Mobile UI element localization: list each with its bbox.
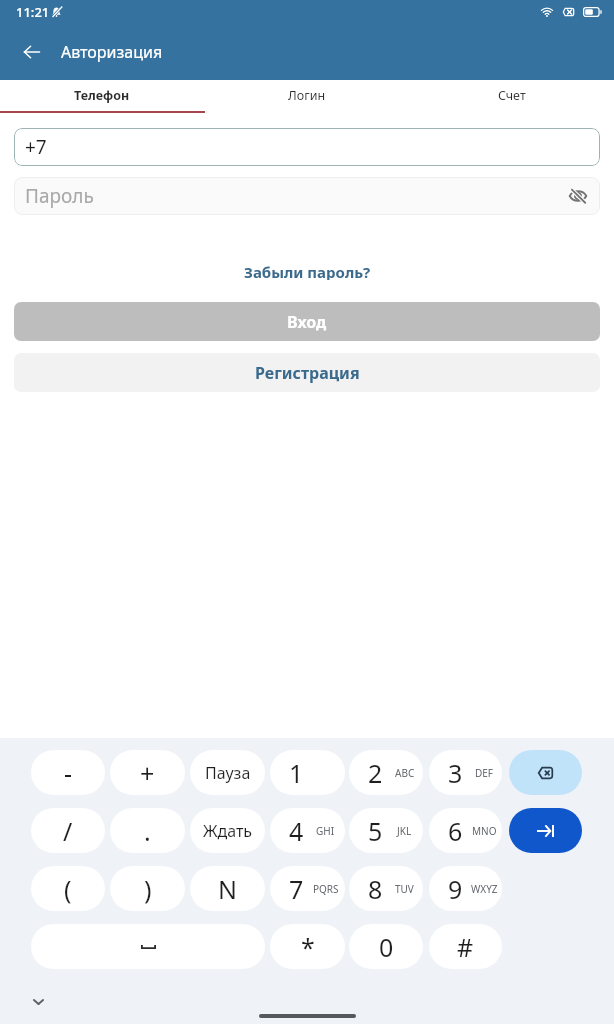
staticText: Логин bbox=[288, 87, 326, 104]
staticText: 2 bbox=[368, 756, 383, 790]
button[interactable]: . bbox=[110, 808, 185, 853]
button[interactable]: 9 bbox=[429, 866, 502, 911]
staticText: +7 bbox=[25, 134, 47, 160]
button[interactable]: Логин bbox=[204, 80, 409, 111]
staticText: 6 bbox=[448, 814, 463, 848]
button[interactable]: Show password bbox=[564, 182, 592, 210]
button[interactable]: 0 bbox=[349, 924, 423, 969]
staticText: Ждать bbox=[203, 820, 253, 842]
button[interactable]: Забыли пароль? bbox=[238, 260, 377, 282]
staticText: - bbox=[64, 756, 73, 790]
staticText: ABC bbox=[395, 766, 415, 780]
staticText: * bbox=[301, 930, 315, 964]
button[interactable]: + bbox=[110, 750, 185, 795]
staticText: 11:21 bbox=[16, 3, 50, 21]
staticText: 9 bbox=[448, 872, 463, 906]
staticText: # bbox=[457, 930, 474, 964]
staticText: N bbox=[218, 872, 238, 906]
button[interactable]: Регистрация bbox=[14, 353, 600, 392]
button[interactable]: - bbox=[31, 750, 105, 795]
staticText: MNO bbox=[472, 824, 497, 838]
button[interactable]: Enter bbox=[509, 808, 582, 853]
button[interactable]: / bbox=[31, 808, 105, 853]
staticText: 7 bbox=[289, 872, 304, 906]
button[interactable]: Телефон bbox=[0, 80, 204, 111]
button[interactable]: Back bbox=[14, 34, 50, 70]
staticText: 1 bbox=[289, 756, 304, 790]
button[interactable]: ) bbox=[110, 866, 185, 911]
button[interactable]: 3 bbox=[429, 750, 502, 795]
staticText: TUV bbox=[395, 882, 414, 896]
button[interactable]: Пауза bbox=[190, 750, 265, 795]
staticText: + bbox=[140, 756, 155, 790]
staticText: Авторизация bbox=[61, 41, 163, 63]
button[interactable]: Backspace bbox=[509, 750, 582, 795]
button[interactable]: Счет bbox=[409, 80, 614, 111]
button[interactable]: 5 bbox=[349, 808, 423, 853]
staticText: DEF bbox=[475, 766, 494, 780]
button[interactable]: 2 bbox=[349, 750, 423, 795]
button[interactable]: 6 bbox=[429, 808, 502, 853]
button[interactable]: * bbox=[270, 924, 345, 969]
staticText: Пауза bbox=[205, 762, 251, 784]
button[interactable]: 4 bbox=[270, 808, 345, 853]
button[interactable]: Пароль bbox=[14, 177, 600, 215]
staticText: / bbox=[63, 814, 73, 848]
button[interactable]: +7 bbox=[14, 128, 600, 166]
staticText: PQRS bbox=[313, 882, 339, 896]
staticText: . bbox=[144, 814, 151, 848]
staticText: Пароль bbox=[25, 183, 94, 209]
staticText: Телефон bbox=[74, 87, 130, 104]
button[interactable]: Space bbox=[31, 924, 265, 969]
staticText: 0 bbox=[379, 930, 394, 964]
staticText: ) bbox=[144, 872, 152, 906]
staticText: WXYZ bbox=[471, 882, 498, 896]
button[interactable]: 1 bbox=[270, 750, 345, 795]
staticText: Регистрация bbox=[255, 362, 360, 384]
staticText: Счет bbox=[498, 87, 526, 104]
button[interactable]: Ждать bbox=[190, 808, 265, 853]
button[interactable]: Вход bbox=[14, 302, 600, 341]
staticText: GHI bbox=[316, 824, 335, 838]
button[interactable]: Hide keyboard bbox=[25, 989, 51, 1015]
staticText: Забыли пароль? bbox=[244, 262, 371, 280]
button[interactable]: # bbox=[429, 924, 502, 969]
button[interactable]: ( bbox=[31, 866, 105, 911]
button[interactable]: N bbox=[190, 866, 265, 911]
staticText: 4 bbox=[289, 814, 304, 848]
staticText: 3 bbox=[448, 756, 463, 790]
staticText: 5 bbox=[368, 814, 383, 848]
staticText: ( bbox=[64, 872, 72, 906]
staticText: JKL bbox=[397, 824, 412, 838]
button[interactable]: 7 bbox=[270, 866, 345, 911]
staticText: Вход bbox=[287, 311, 327, 333]
staticText: 8 bbox=[368, 872, 383, 906]
button[interactable]: 8 bbox=[349, 866, 423, 911]
